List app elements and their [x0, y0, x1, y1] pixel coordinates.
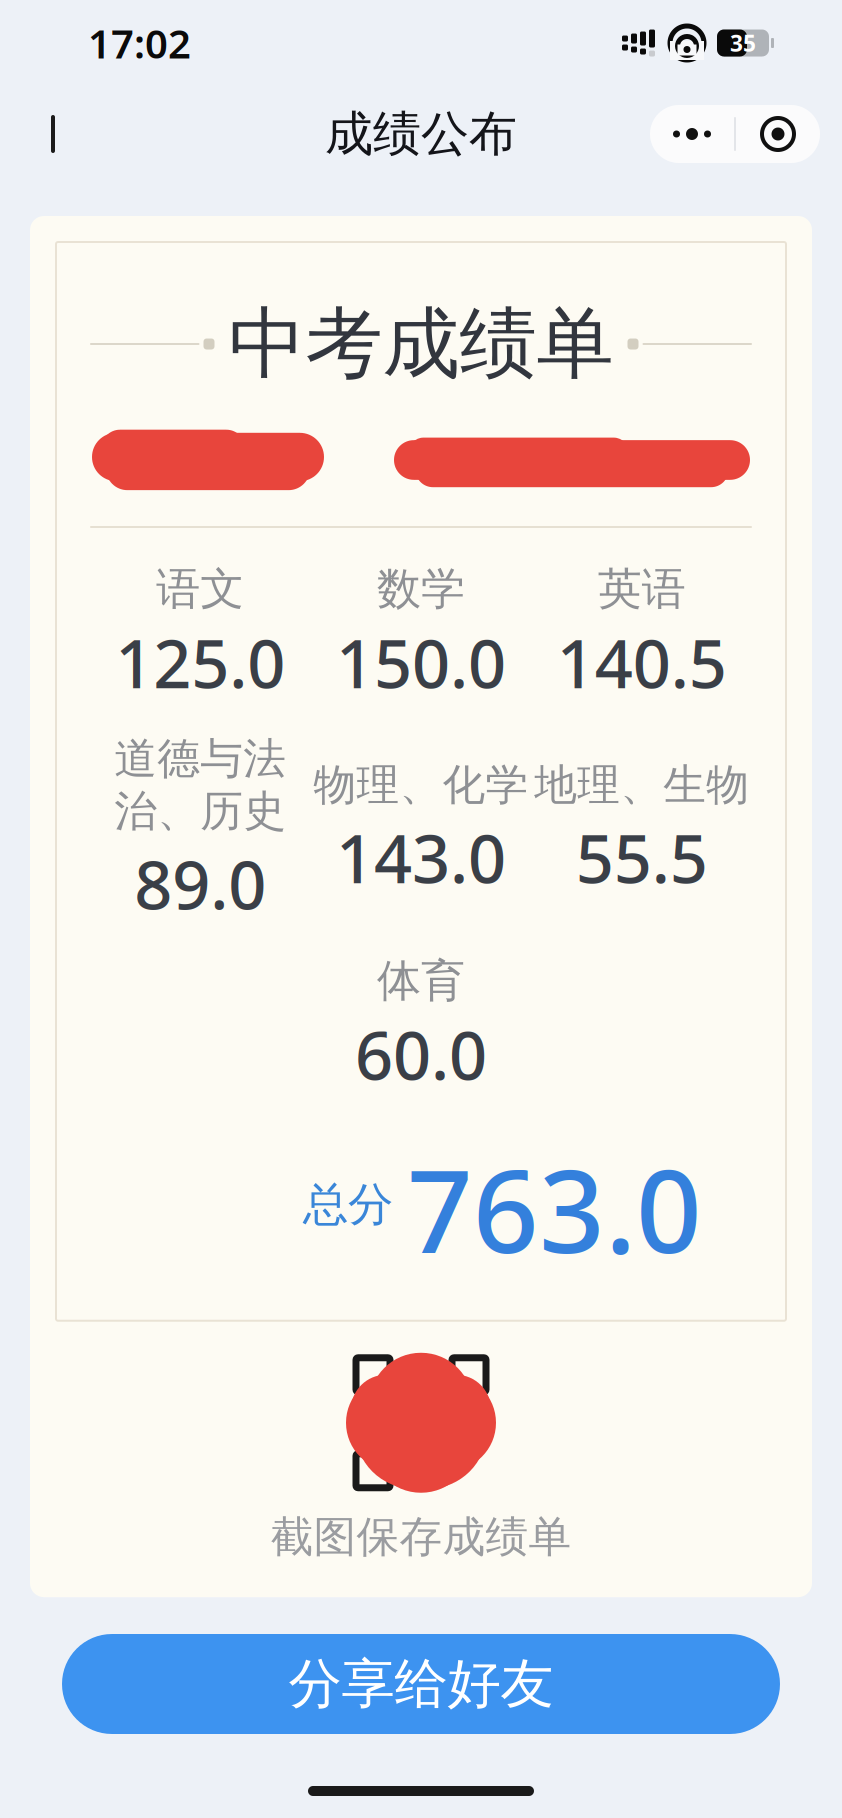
- staticText: 55.5: [576, 813, 708, 902]
- staticText: 道德与法治、历史: [114, 733, 286, 837]
- staticText: 截图保存成绩单: [270, 1511, 571, 1563]
- staticText: 分享给好友: [288, 1651, 553, 1717]
- staticText: 140.5: [557, 618, 727, 706]
- staticText: 语文: [156, 562, 244, 616]
- staticText: 89.0: [134, 839, 266, 928]
- button[interactable]: Back: [22, 100, 84, 168]
- staticText: 763.0: [407, 1132, 702, 1285]
- staticText: 成绩公布: [325, 104, 517, 163]
- staticText: 英语: [598, 562, 686, 616]
- staticText: 60.0: [355, 1010, 487, 1098]
- staticText: 17:02: [88, 16, 191, 69]
- staticText: 35: [730, 28, 756, 58]
- button[interactable]: Close: [736, 105, 820, 163]
- staticText: 中考成绩单: [228, 296, 613, 391]
- staticText: 数学: [377, 562, 465, 616]
- staticText: 地理、生物: [534, 759, 749, 811]
- staticText: 143.0: [336, 813, 506, 902]
- staticText: 总分: [303, 1177, 393, 1232]
- staticText: 物理、化学: [313, 759, 528, 811]
- button[interactable]: More: [650, 105, 734, 163]
- staticText: 125.0: [115, 618, 285, 706]
- button[interactable]: 分享给好友: [62, 1634, 780, 1734]
- staticText: 150.0: [336, 618, 506, 706]
- staticText: 体育: [377, 954, 465, 1008]
